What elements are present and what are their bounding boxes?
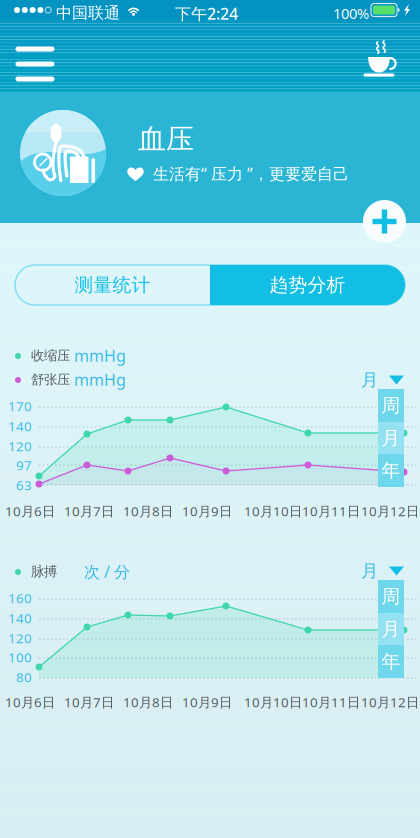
staticText: 100	[8, 648, 32, 666]
staticText: 100%	[333, 3, 369, 23]
button[interactable]: 年	[378, 645, 404, 678]
staticText: 周	[381, 585, 400, 608]
staticText: 10月12日	[361, 693, 419, 711]
staticText: 63	[16, 476, 32, 494]
staticText: 10月9日	[182, 502, 232, 520]
button[interactable]: 周	[378, 389, 404, 422]
button[interactable]: 年	[378, 454, 404, 487]
staticText: 140	[8, 609, 32, 627]
staticText: 年	[381, 459, 400, 482]
button[interactable]: 趋势分析	[210, 265, 405, 305]
button[interactable]: 月	[361, 563, 405, 579]
staticText: 10月6日	[5, 693, 55, 711]
button[interactable]: Menu	[3, 36, 67, 92]
staticText: 10月8日	[123, 502, 173, 520]
staticText: 月	[381, 426, 400, 449]
staticText: 140	[8, 417, 32, 435]
button[interactable]: Coffee	[353, 32, 409, 88]
staticText: 10月7日	[64, 693, 114, 711]
staticText: 10月10日	[244, 693, 302, 711]
button[interactable]: 月	[378, 613, 404, 645]
staticText: 舒张压	[31, 371, 70, 388]
staticText: 年	[381, 650, 400, 673]
button[interactable]: 月	[378, 422, 404, 454]
button[interactable]: 月	[361, 372, 405, 388]
button[interactable]: 测量统计	[15, 265, 210, 305]
staticText: 生活有“ 压力 ”，更要爱自己	[153, 163, 349, 184]
staticText: 次 / 分	[84, 561, 130, 582]
staticText: 10月10日	[244, 502, 302, 520]
button[interactable]: Add record	[363, 200, 406, 243]
staticText: mmHg	[74, 345, 126, 366]
staticText: 10月8日	[123, 693, 173, 711]
staticText: 周	[381, 394, 400, 417]
staticText: 170	[8, 397, 32, 415]
staticText: 10月11日	[302, 502, 360, 520]
button[interactable]: 周	[378, 580, 404, 613]
staticText: 10月6日	[5, 502, 55, 520]
staticText: 趋势分析	[269, 273, 345, 296]
staticText: 10月11日	[302, 693, 360, 711]
staticText: 测量统计	[74, 273, 150, 296]
staticText: 120	[8, 437, 32, 455]
staticText: 中国联通	[56, 3, 120, 23]
staticText: 160	[8, 589, 32, 607]
staticText: 脉搏	[31, 563, 57, 580]
staticText: 10月12日	[361, 502, 419, 520]
staticText: 10月7日	[64, 502, 114, 520]
staticText: 97	[16, 456, 32, 474]
staticText: 120	[8, 629, 32, 647]
staticText: 血压	[138, 122, 194, 156]
staticText: 收缩压	[31, 347, 70, 364]
staticText: 10月9日	[182, 693, 232, 711]
staticText: 月	[381, 617, 400, 640]
staticText: 下午2:24	[175, 3, 238, 24]
staticText: 月	[361, 560, 378, 582]
staticText: 80	[16, 668, 32, 686]
staticText: 月	[361, 369, 378, 391]
staticText: mmHg	[74, 369, 126, 390]
